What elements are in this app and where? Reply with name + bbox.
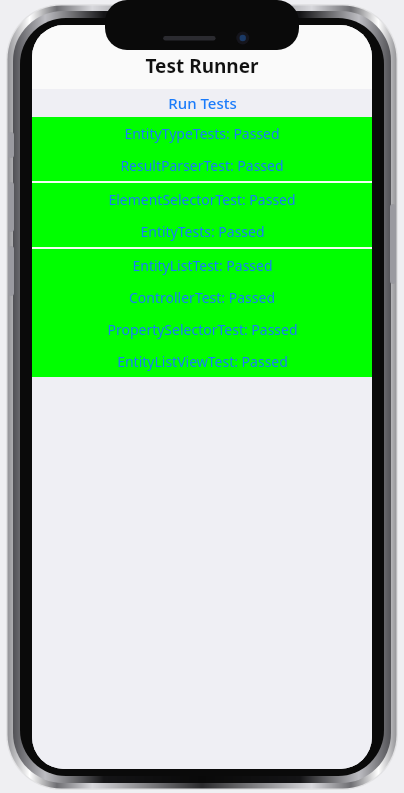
button[interactable]: EntityTypeTests: Passed: [32, 117, 372, 149]
button[interactable]: Run Tests: [32, 89, 372, 117]
staticText: Test Runner: [145, 53, 259, 79]
button[interactable]: ControllerTest: Passed: [32, 281, 372, 313]
staticText: ElementSelectorTest: Passed: [108, 190, 296, 209]
button[interactable]: EntityListTest: Passed: [32, 249, 372, 281]
staticText: ResultParserTest: Passed: [120, 156, 284, 175]
staticText: ControllerTest: Passed: [129, 288, 275, 307]
staticText: EntityListTest: Passed: [132, 256, 273, 275]
button[interactable]: PropertySelectorTest: Passed: [32, 313, 372, 345]
staticText: EntityListViewTest: Passed: [117, 352, 288, 371]
button[interactable]: EntityTests: Passed: [32, 215, 372, 247]
staticText: EntityTests: Passed: [140, 222, 265, 241]
staticText: Run Tests: [168, 93, 237, 113]
button[interactable]: ElementSelectorTest: Passed: [32, 183, 372, 215]
button[interactable]: ResultParserTest: Passed: [32, 149, 372, 181]
button[interactable]: EntityListViewTest: Passed: [32, 345, 372, 377]
staticText: PropertySelectorTest: Passed: [107, 320, 298, 339]
staticText: EntityTypeTests: Passed: [124, 124, 280, 143]
